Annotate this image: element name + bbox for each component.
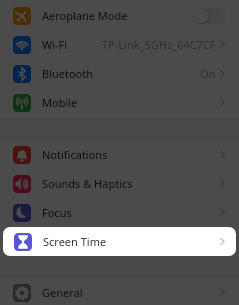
button[interactable]: Bluetooth: [0, 59, 239, 88]
button[interactable]: General: [0, 278, 239, 305]
staticText: Sounds & Haptics: [42, 176, 133, 191]
button[interactable]: Aeroplane Mode toggle: [193, 8, 225, 24]
staticText: On: [200, 66, 216, 81]
staticText: Screen Time: [43, 234, 107, 249]
staticText: General: [42, 285, 83, 300]
button[interactable]: Wi-Fi: [0, 30, 239, 59]
staticText: Bluetooth: [42, 66, 94, 81]
staticText: Notifications: [42, 147, 108, 162]
button[interactable]: Notifications: [0, 140, 239, 169]
staticText: Focus: [42, 205, 72, 220]
button[interactable]: Aeroplane Mode: [0, 1, 239, 30]
button[interactable]: Sounds & Haptics: [0, 169, 239, 198]
staticText: Aeroplane Mode: [42, 8, 128, 23]
button[interactable]: Screen Time: [0, 227, 239, 256]
button[interactable]: Focus: [0, 198, 239, 227]
button[interactable]: Mobile: [0, 88, 239, 117]
staticText: Mobile: [42, 95, 78, 110]
staticText: TP-Link_5GHz_64C7CF: [102, 37, 216, 52]
staticText: Wi-Fi: [42, 37, 68, 52]
